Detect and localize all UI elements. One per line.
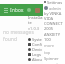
button[interactable]: Account (35, 8, 40, 13)
staticText: Config (32, 42, 43, 47)
button[interactable]: admin (44, 5, 65, 11)
button[interactable]: Logs (28, 52, 43, 57)
staticText: Settings (47, 0, 63, 4)
staticText: Spinner (44, 56, 59, 61)
staticText: Logs (32, 52, 41, 57)
staticText: menu item (44, 62, 65, 64)
staticText: About (32, 57, 43, 62)
staticText: InstaGate (28, 15, 43, 25)
button[interactable]: Config (28, 42, 43, 47)
button[interactable]: System (28, 37, 43, 42)
staticText: CONNECT 2005 (44, 21, 65, 31)
staticText: top (44, 50, 51, 55)
staticText: v1.0.3 (28, 26, 40, 31)
staticText: ANXIETY 100 (44, 32, 65, 42)
staticText: admin (49, 6, 61, 11)
staticText: by VINKA VIDA (44, 11, 65, 21)
button[interactable]: Settings (44, 0, 65, 4)
staticText: Inbox (10, 7, 24, 14)
button[interactable]: Menu (2, 7, 9, 14)
staticText: System (32, 37, 43, 42)
staticText: Devices (32, 47, 43, 52)
button[interactable]: Search (26, 7, 32, 13)
button[interactable]: About (28, 57, 43, 62)
staticText: more (44, 43, 54, 48)
button[interactable]: Devices (28, 47, 43, 52)
staticText: no messages found (3, 29, 43, 43)
